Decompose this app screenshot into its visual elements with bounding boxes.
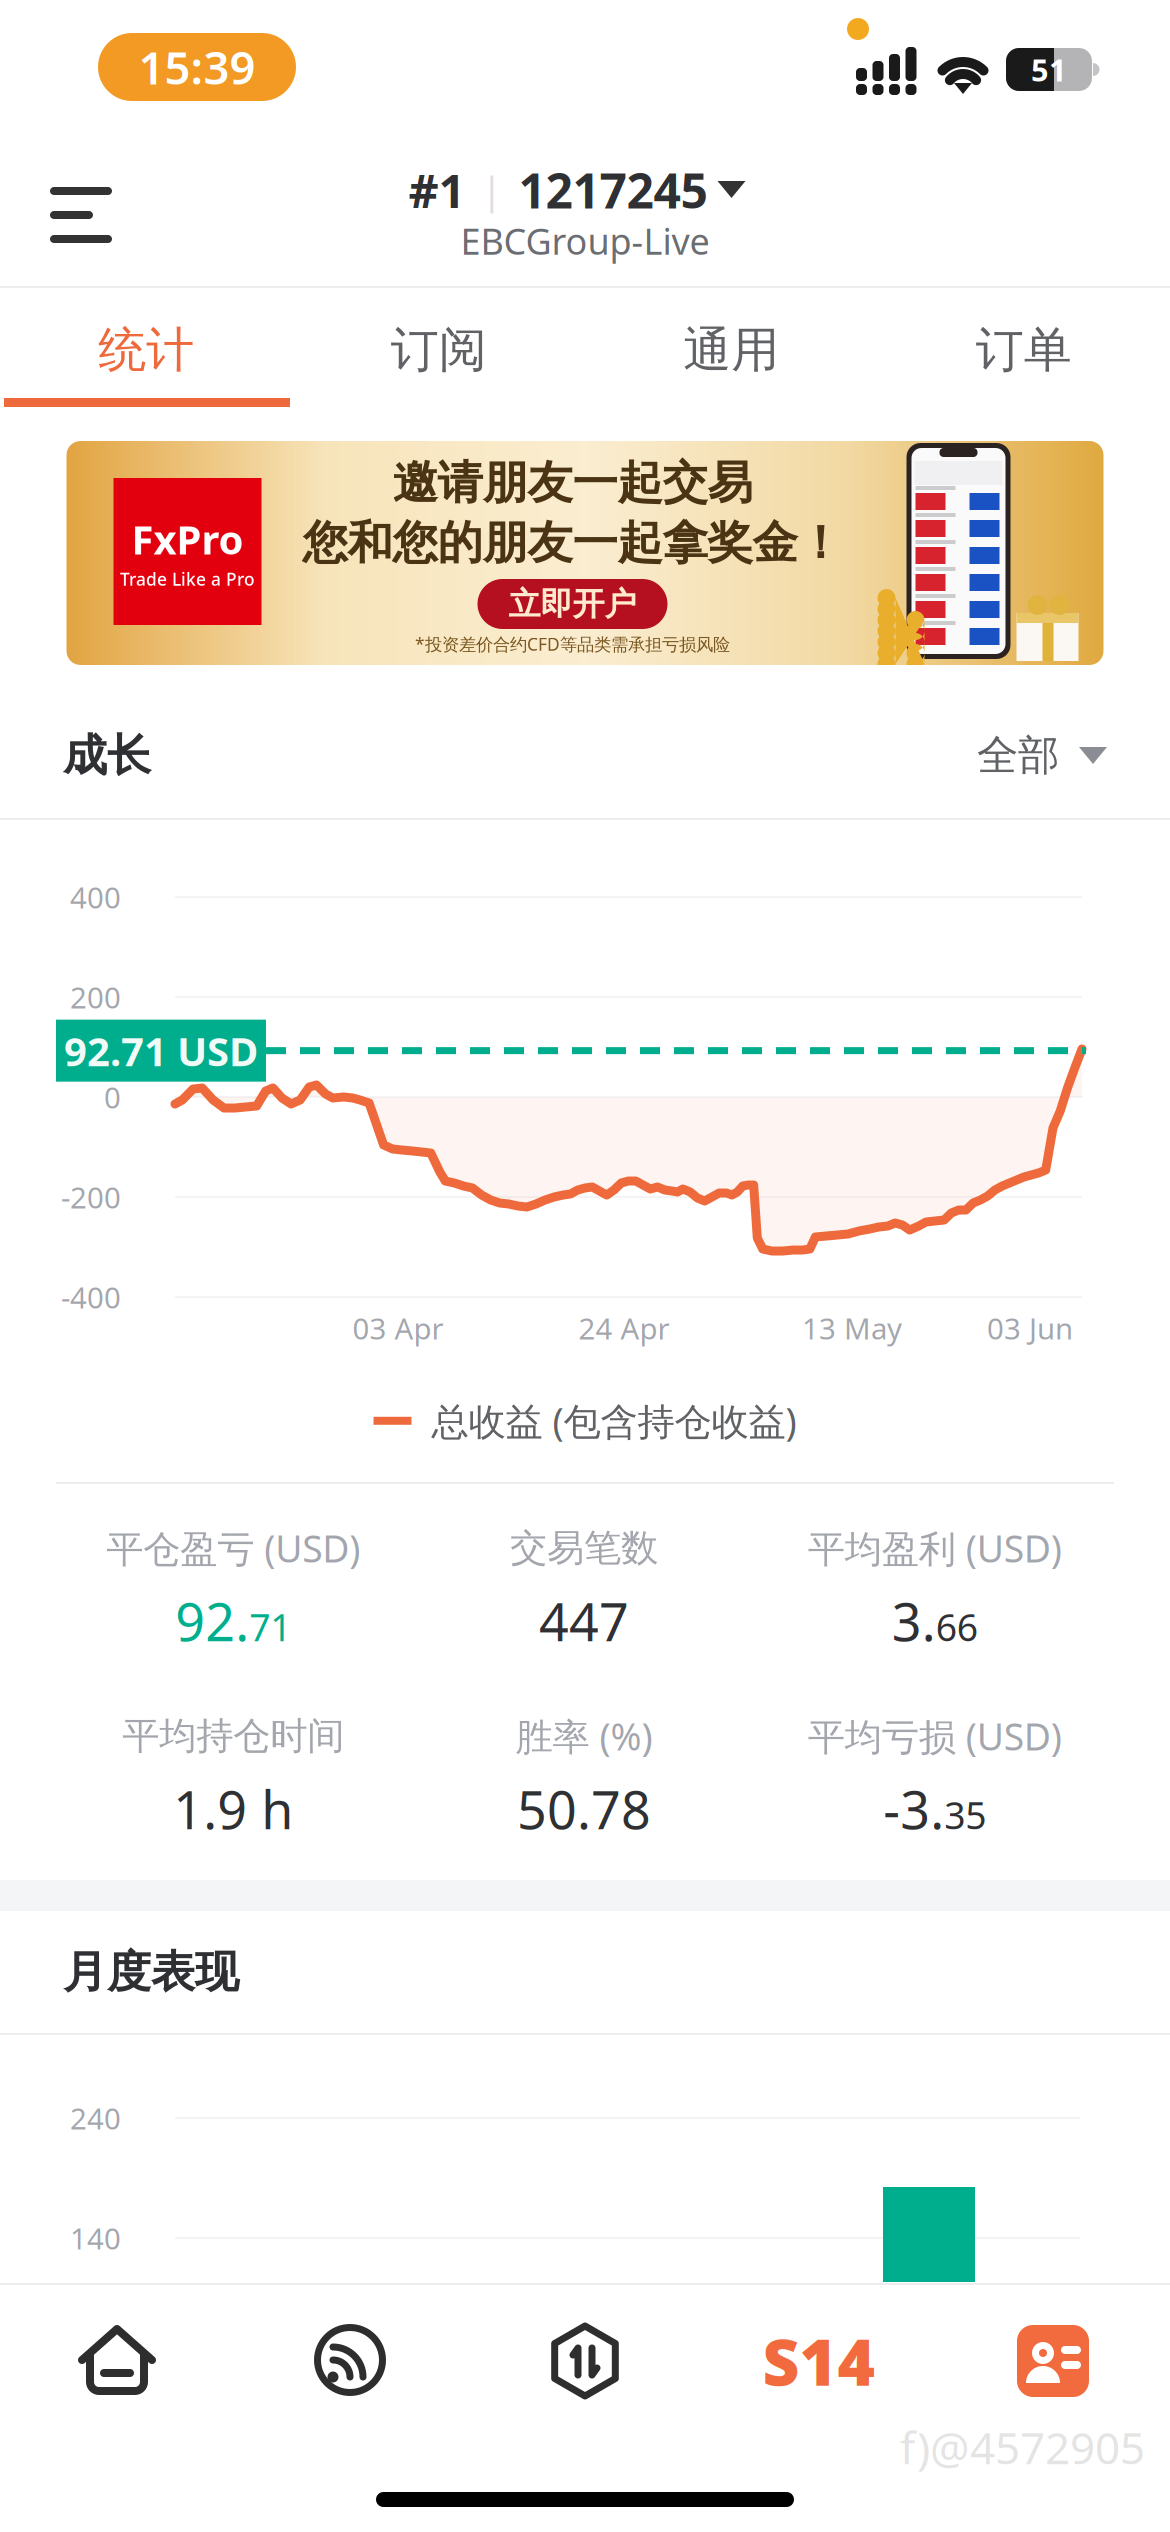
button[interactable]: Home <box>0 2297 234 2425</box>
staticText: 240 <box>70 2098 121 2137</box>
staticText: *投资差价合约CFD等品类需承担亏损风险 <box>415 632 730 655</box>
staticText: 总收益 (包含持仓收益) <box>431 1396 796 1446</box>
staticText: 0 <box>104 1077 121 1116</box>
staticText: 您和您的朋友一起拿奖金！ <box>302 515 842 571</box>
staticText: | <box>481 165 502 215</box>
staticText: 成长 <box>63 728 151 782</box>
button[interactable]: #1 <box>0 160 1170 220</box>
button[interactable]: 订单 <box>877 288 1170 412</box>
staticText: 66 <box>936 1602 978 1651</box>
staticText: 50.78 <box>517 1774 651 1844</box>
button[interactable]: Account <box>936 2297 1170 2425</box>
button[interactable]: 订阅 <box>292 288 585 412</box>
staticText: 邀请朋友一起交易 <box>392 455 752 511</box>
button[interactable]: 全部 <box>977 730 1107 781</box>
button[interactable]: Trading <box>468 2297 702 2425</box>
staticText: #1 <box>408 159 465 221</box>
staticText: 订阅 <box>391 320 487 379</box>
staticText: 03 Jun <box>987 1308 1073 1347</box>
staticText: 订单 <box>976 320 1072 379</box>
staticText: 通用 <box>683 320 779 379</box>
staticText: 立即开户 <box>508 584 636 624</box>
staticText: -200 <box>61 1177 121 1216</box>
staticText: 3. <box>892 1586 936 1656</box>
staticText: -400 <box>61 1277 121 1316</box>
staticText: 140 <box>70 2218 121 2257</box>
staticText: 15:39 <box>138 37 255 97</box>
button[interactable]: Menu <box>22 143 140 271</box>
button[interactable]: S14 <box>702 2297 936 2425</box>
staticText: S14 <box>762 2318 875 2403</box>
staticText: EBCGroup-Live <box>460 217 709 265</box>
staticText: 24 Apr <box>578 1308 669 1347</box>
staticText: 1.9 h <box>173 1774 293 1844</box>
button[interactable]: Signals <box>234 2297 468 2425</box>
staticText: -3. <box>883 1774 944 1844</box>
staticText: 92. <box>175 1586 249 1656</box>
staticText: f)@4572905 <box>900 2418 1145 2476</box>
button[interactable]: 通用 <box>585 288 877 412</box>
staticText: 1217245 <box>518 158 707 222</box>
staticText: 92.71 USD <box>64 1024 258 1077</box>
staticText: 月度表现 <box>63 1945 239 1999</box>
staticText: 平均盈利 (USD) <box>808 1523 1062 1573</box>
staticText: 平均亏损 (USD) <box>808 1711 1062 1761</box>
staticText: FxPro <box>131 512 243 565</box>
button[interactable]: 统计 <box>0 288 292 412</box>
staticText: 03 Apr <box>352 1308 443 1347</box>
staticText: 71 <box>249 1602 291 1651</box>
staticText: Trade Like a Pro <box>120 568 255 591</box>
staticText: 400 <box>70 877 121 916</box>
staticText: 51 <box>1031 49 1067 90</box>
staticText: 全部 <box>977 730 1059 781</box>
staticText: 平均持仓时间 <box>122 1713 344 1759</box>
staticText: 交易笔数 <box>510 1525 658 1571</box>
staticText: 13 May <box>802 1308 902 1347</box>
staticText: 35 <box>944 1790 986 1839</box>
staticText: 200 <box>70 977 121 1016</box>
staticText: 统计 <box>98 320 194 379</box>
staticText: 胜率 (%) <box>515 1711 652 1761</box>
button[interactable]: FxPro <box>66 441 1103 665</box>
staticText: 447 <box>539 1586 629 1656</box>
staticText: 平仓盈亏 (USD) <box>106 1523 360 1573</box>
